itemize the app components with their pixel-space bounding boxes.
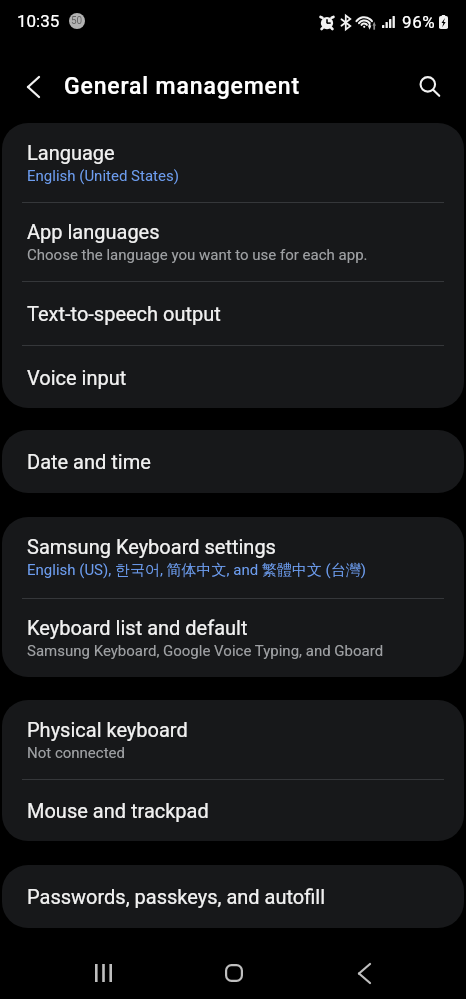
button[interactable]: App languages <box>2 203 464 281</box>
staticText: 96% <box>402 12 436 32</box>
staticText: English (United States) <box>27 167 179 185</box>
button[interactable]: Physical keyboard <box>2 700 464 779</box>
staticText: Date and time <box>27 450 151 473</box>
staticText: Keyboard list and default <box>27 616 248 639</box>
staticText: Samsung Keyboard settings <box>27 535 276 558</box>
button[interactable]: Date and time <box>2 430 464 493</box>
staticText: General management <box>64 73 300 100</box>
staticText: Text-to-speech output <box>27 302 221 325</box>
staticText: Language <box>27 141 115 164</box>
button[interactable]: Passwords, passkeys, and autofill <box>2 865 464 928</box>
staticText: English (US), 한국어, 简体中文, and 繁體中文 (台灣) <box>27 561 366 580</box>
staticText: Voice input <box>27 366 127 389</box>
button[interactable]: Back <box>334 943 394 999</box>
staticText: App languages <box>27 220 160 243</box>
button[interactable]: Language <box>2 123 464 202</box>
button[interactable]: Search <box>408 65 452 109</box>
staticText: Samsung Keyboard, Google Voice Typing, a… <box>27 642 384 660</box>
staticText: Passwords, passkeys, and autofill <box>27 885 326 908</box>
button[interactable]: Navigate up <box>11 65 55 109</box>
staticText: Not connected <box>27 744 125 762</box>
button[interactable]: Samsung Keyboard settings <box>2 517 464 598</box>
button[interactable]: Recent apps <box>73 943 133 999</box>
staticText: 50 <box>71 15 83 27</box>
button[interactable]: Text-to-speech output <box>2 282 464 345</box>
staticText: 10:35 <box>17 11 60 31</box>
button[interactable]: Mouse and trackpad <box>2 780 464 841</box>
staticText: Choose the language you want to use for … <box>27 246 368 264</box>
staticText: Mouse and trackpad <box>27 799 209 822</box>
staticText: Physical keyboard <box>27 718 188 741</box>
button[interactable]: Voice input <box>2 346 464 408</box>
button[interactable]: Home <box>204 943 264 999</box>
button[interactable]: Keyboard list and default <box>2 599 464 677</box>
